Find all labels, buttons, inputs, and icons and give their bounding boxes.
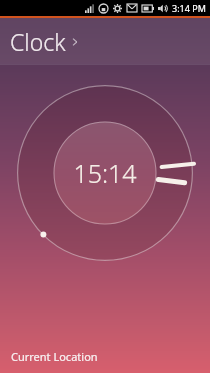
- staticText: Current Location: [11, 349, 98, 364]
- staticText: 15:14: [73, 156, 137, 190]
- staticText: 3:14 PM: [172, 2, 206, 14]
- button[interactable]: Analog clock showing 15:14: [17, 85, 193, 261]
- button[interactable]: Clock: [0, 18, 210, 64]
- staticText: Clock: [10, 26, 66, 57]
- button[interactable]: Current Location: [0, 339, 210, 373]
